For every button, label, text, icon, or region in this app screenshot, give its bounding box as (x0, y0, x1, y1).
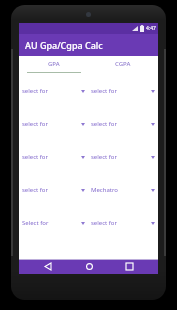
staticText: Select for Auto (22, 219, 51, 227)
other: Open dropdown (81, 156, 85, 159)
button[interactable]: Home (77, 259, 101, 274)
button[interactable]: select for IT (91, 147, 155, 167)
staticText: select for Mech (22, 153, 51, 161)
button[interactable]: select for Mech (22, 147, 85, 167)
button[interactable]: Back (36, 259, 60, 274)
other: Open dropdown (151, 156, 155, 159)
button[interactable]: Recent apps (117, 259, 141, 274)
other: Open dropdown (81, 123, 85, 126)
staticText: select for Aero (22, 186, 51, 194)
button[interactable]: select for civil (22, 81, 85, 101)
other: Open dropdown (151, 222, 155, 225)
button[interactable]: select for EEE (22, 114, 85, 134)
button[interactable]: select for EIE (91, 213, 155, 233)
other: Open dropdown (81, 90, 85, 93)
staticText: AU Gpa/Cgpa Calc (25, 39, 103, 51)
button[interactable]: select for ECE (91, 114, 155, 134)
staticText: Mechatronics (91, 186, 121, 194)
button[interactable]: CGPA (88, 56, 158, 72)
button[interactable]: select for Aero (22, 180, 85, 200)
button[interactable]: select for cse (91, 81, 155, 101)
staticText: select for EIE (91, 219, 121, 227)
staticText: 4:47 (146, 25, 156, 32)
staticText: select for ECE (91, 120, 121, 128)
staticText: select for civil (22, 87, 51, 95)
staticText: select for cse (91, 87, 121, 95)
other: Open dropdown (151, 90, 155, 93)
staticText: CGPA (115, 60, 131, 68)
other: Open dropdown (151, 189, 155, 192)
other: Open dropdown (151, 123, 155, 126)
other: Open dropdown (81, 222, 85, 225)
staticText: GPA (48, 60, 60, 68)
staticText: select for EEE (22, 120, 51, 128)
button[interactable]: Mechatronics (91, 180, 155, 200)
button[interactable]: GPA (19, 56, 88, 72)
other: Open dropdown (81, 189, 85, 192)
staticText: select for IT (91, 153, 121, 161)
button[interactable]: Select for Auto (22, 213, 85, 233)
